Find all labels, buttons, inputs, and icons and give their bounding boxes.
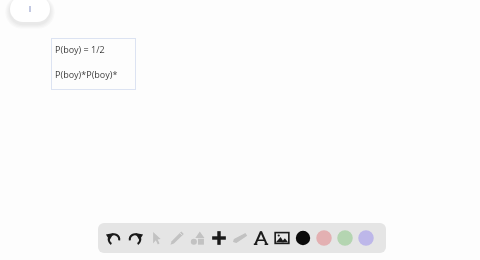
button[interactable]: Green colour bbox=[334, 223, 355, 253]
button[interactable]: Eraser bbox=[229, 223, 250, 253]
staticText: P(boy) = 1/2 bbox=[55, 43, 105, 55]
button[interactable]: Insert image bbox=[271, 223, 292, 253]
button[interactable]: Black colour bbox=[292, 223, 313, 253]
button[interactable]: Menu bbox=[10, 0, 50, 22]
button[interactable]: Shapes bbox=[187, 223, 208, 253]
button[interactable]: Redo bbox=[124, 223, 145, 253]
button[interactable]: Pink colour bbox=[313, 223, 334, 253]
staticText: P(boy)*P(boy)* bbox=[55, 68, 118, 80]
button[interactable]: Text bbox=[250, 223, 271, 253]
button[interactable]: Purple colour bbox=[355, 223, 376, 253]
button[interactable]: P(boy) = 1/2 bbox=[51, 38, 136, 90]
button[interactable]: Add bbox=[208, 223, 229, 253]
button[interactable]: Pen bbox=[166, 223, 187, 253]
button[interactable]: Undo bbox=[103, 223, 124, 253]
button[interactable]: Select bbox=[145, 223, 166, 253]
